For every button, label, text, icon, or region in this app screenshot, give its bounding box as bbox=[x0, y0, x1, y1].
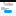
button[interactable] bbox=[4, 10, 12, 13]
staticText: Today bbox=[3, 1, 13, 7]
